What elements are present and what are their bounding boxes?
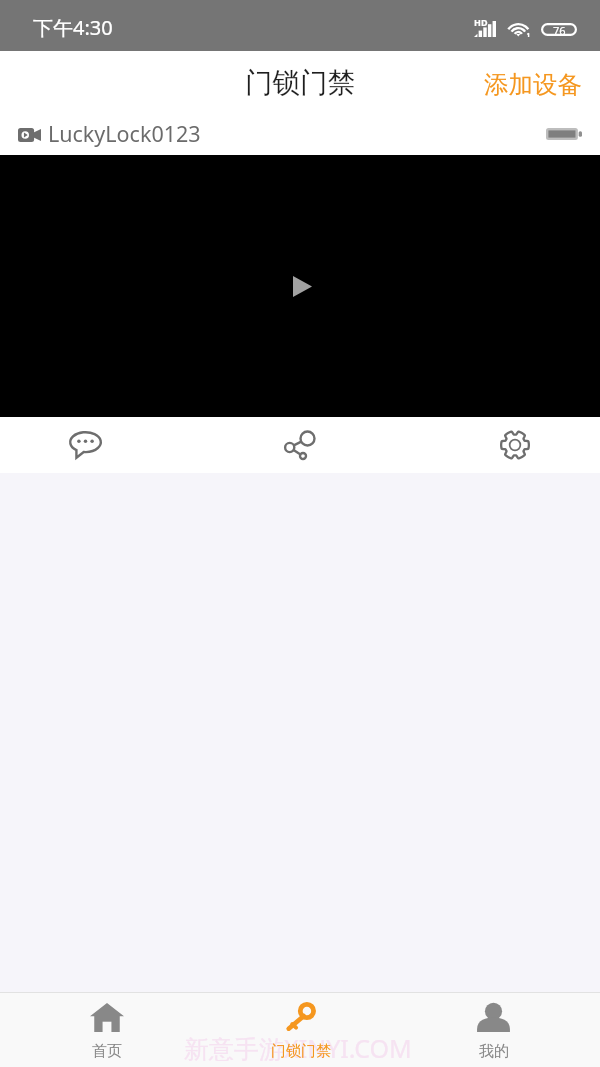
staticText: 添加设备 — [484, 69, 582, 100]
button[interactable]: Messages — [63, 423, 107, 467]
button[interactable]: 我的 — [397, 993, 590, 1067]
staticText: 首页 — [92, 1042, 122, 1061]
button[interactable]: Share — [278, 423, 322, 467]
staticText: 门锁门禁 — [245, 66, 355, 101]
button[interactable]: 首页 — [10, 993, 204, 1067]
staticText: 新意手游XINYI.COM — [184, 1031, 412, 1065]
staticText: 门锁门禁 — [271, 1042, 331, 1061]
staticText: LuckyLock0123 — [48, 119, 201, 148]
staticText: HD — [474, 16, 488, 28]
button[interactable]: Play — [293, 276, 312, 297]
button[interactable]: Settings — [493, 423, 537, 467]
button[interactable]: 门锁门禁 — [204, 993, 397, 1067]
button[interactable]: 添加设备 — [464, 53, 600, 112]
staticText: 我的 — [479, 1042, 509, 1061]
staticText: 下午4:30 — [33, 14, 113, 41]
staticText: 76 — [553, 23, 566, 36]
